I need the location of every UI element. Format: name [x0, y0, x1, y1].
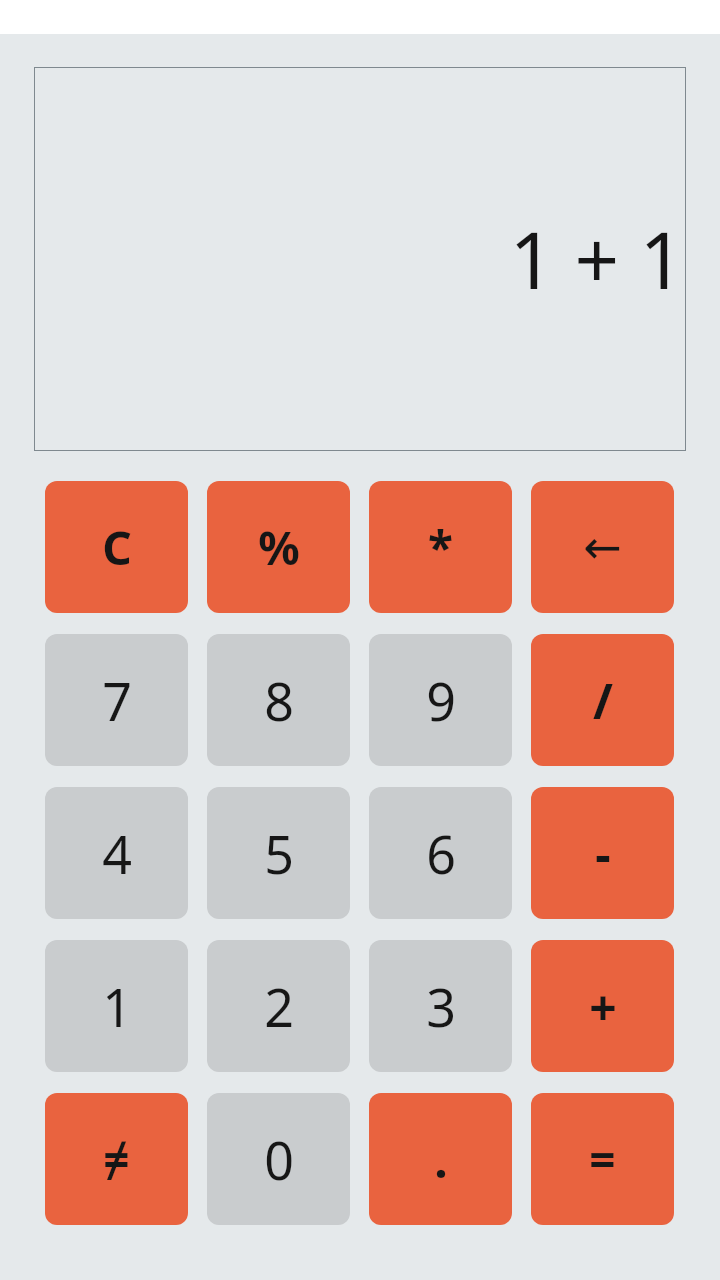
staticText: 3	[426, 971, 456, 1042]
button[interactable]: *	[369, 481, 512, 613]
button[interactable]: 0	[207, 1093, 350, 1225]
button[interactable]: 3	[369, 940, 512, 1072]
button[interactable]: +	[531, 940, 674, 1072]
staticText: 2	[264, 971, 294, 1042]
button[interactable]: 2	[207, 940, 350, 1072]
staticText: ←	[583, 520, 622, 574]
button[interactable]: =	[531, 1093, 674, 1225]
button[interactable]: .	[369, 1093, 512, 1225]
button[interactable]: ≠	[45, 1093, 188, 1225]
staticText: ≠	[103, 1128, 130, 1191]
button[interactable]: C	[45, 481, 188, 613]
staticText: /	[593, 668, 613, 733]
button[interactable]: 7	[45, 634, 188, 766]
button[interactable]: 9	[369, 634, 512, 766]
staticText: 8	[264, 665, 294, 736]
button[interactable]: 5	[207, 787, 350, 919]
button[interactable]: 8	[207, 634, 350, 766]
button[interactable]: 1	[45, 940, 188, 1072]
button[interactable]: Backspace	[531, 481, 674, 613]
staticText: %	[258, 516, 300, 579]
staticText: 1	[102, 971, 132, 1042]
staticText: C	[102, 516, 132, 579]
staticText: .	[434, 1127, 448, 1192]
staticText: 1 + 1	[509, 206, 684, 312]
staticText: -	[595, 821, 611, 886]
button[interactable]: -	[531, 787, 674, 919]
staticText: 0	[264, 1124, 294, 1195]
staticText: 5	[264, 818, 294, 889]
staticText: *	[428, 516, 453, 579]
staticText: 6	[426, 818, 456, 889]
button[interactable]: 6	[369, 787, 512, 919]
staticText: 4	[102, 818, 132, 889]
button[interactable]: %	[207, 481, 350, 613]
staticText: 9	[426, 665, 456, 736]
staticText: 7	[102, 665, 132, 736]
button[interactable]: /	[531, 634, 674, 766]
button[interactable]: 4	[45, 787, 188, 919]
staticText: +	[589, 974, 617, 1039]
staticText: =	[589, 1128, 616, 1191]
